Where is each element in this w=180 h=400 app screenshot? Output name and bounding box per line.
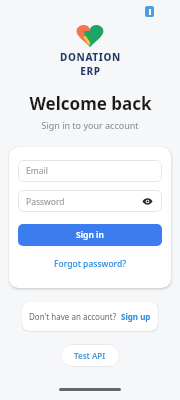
button[interactable]: Sign in — [18, 224, 162, 246]
staticText: Sign up — [121, 311, 151, 322]
button[interactable]: Forgot password? — [51, 256, 130, 272]
staticText: Forgot password? — [54, 258, 127, 270]
staticText: Welcome back — [29, 92, 152, 115]
button[interactable]: Don't have an account? — [22, 302, 158, 331]
staticText: Don't have an account? — [29, 311, 117, 322]
button[interactable]: Test API — [60, 344, 120, 367]
staticText: Email — [26, 165, 48, 177]
button[interactable]: Email — [18, 160, 162, 182]
button[interactable]: Show password — [141, 195, 154, 208]
staticText: Password — [26, 196, 141, 208]
button[interactable]: Password — [18, 190, 162, 212]
staticText: Sign in — [76, 229, 104, 241]
staticText: Test API — [74, 350, 106, 361]
other: Debug badge — [145, 6, 154, 17]
staticText: DONATION — [60, 50, 121, 64]
staticText: ERP — [80, 64, 101, 78]
staticText: Sign in to your account — [41, 119, 139, 131]
